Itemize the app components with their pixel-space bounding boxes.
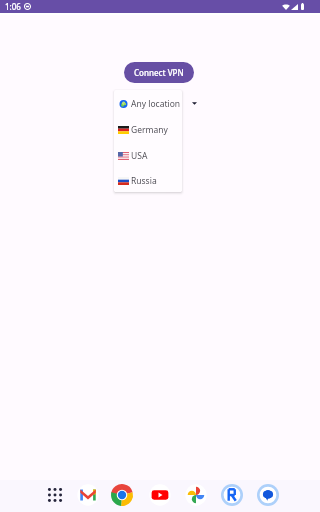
button[interactable]: USA: [114, 143, 182, 169]
button[interactable]: Reddit: [220, 483, 244, 507]
staticText: 1:06: [5, 1, 21, 12]
button[interactable]: Connect VPN: [124, 62, 194, 83]
staticText: USA: [131, 150, 148, 162]
button[interactable]: Google Photos: [184, 483, 208, 507]
button[interactable]: Gmail: [76, 483, 100, 507]
button[interactable]: Chrome: [110, 483, 134, 507]
button[interactable]: Germany: [114, 117, 182, 143]
staticText: Any location: [131, 98, 181, 110]
staticText: Connect VPN: [134, 67, 184, 78]
button[interactable]: Messages: [256, 483, 280, 507]
staticText: Germany: [131, 124, 168, 136]
button[interactable]: YouTube: [148, 483, 172, 507]
button[interactable]: Open location list: [187, 96, 201, 110]
staticText: Russia: [131, 175, 157, 187]
button[interactable]: All apps: [43, 483, 67, 507]
button[interactable]: Any location: [114, 91, 182, 117]
button[interactable]: Russia: [114, 169, 182, 192]
